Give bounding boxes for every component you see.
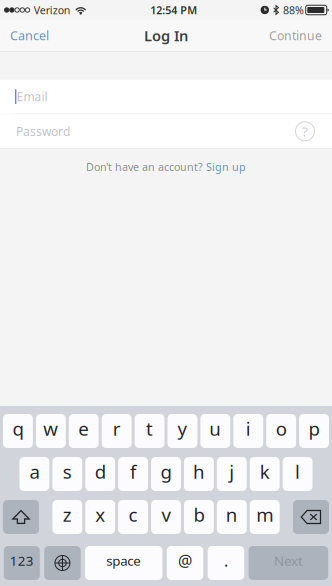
button[interactable]: r <box>102 414 132 448</box>
staticText: c <box>129 502 138 527</box>
button[interactable]: f <box>118 457 148 491</box>
button[interactable]: 123 <box>4 546 40 580</box>
staticText: p <box>308 416 319 441</box>
staticText: y <box>177 416 187 441</box>
button[interactable]: q <box>3 414 33 448</box>
button[interactable]: h <box>184 457 214 491</box>
button[interactable]: a <box>19 457 49 491</box>
button[interactable]: l <box>283 457 312 491</box>
button[interactable]: Password <box>0 114 332 148</box>
staticText: s <box>63 459 72 484</box>
staticText: ? <box>302 122 308 140</box>
button[interactable]: c <box>118 500 148 534</box>
button[interactable]: @ <box>167 546 203 580</box>
staticText: z <box>63 502 72 527</box>
button[interactable]: i <box>233 414 263 448</box>
button[interactable]: d <box>85 457 115 491</box>
button[interactable]: Sign up <box>206 160 246 174</box>
staticText: f <box>130 459 136 484</box>
staticText: x <box>95 502 105 527</box>
button[interactable]: Delete <box>293 500 329 534</box>
staticText: a <box>29 459 39 484</box>
button[interactable]: m <box>250 500 280 534</box>
button[interactable]: w <box>36 414 66 448</box>
staticText: w <box>43 416 58 441</box>
button[interactable]: n <box>217 500 247 534</box>
button[interactable]: x <box>85 500 115 534</box>
button[interactable]: p <box>299 414 329 448</box>
staticText: 123 <box>10 551 34 570</box>
button[interactable]: Next keyboard <box>44 546 81 580</box>
staticText: e <box>78 416 89 441</box>
button[interactable]: Email <box>0 80 332 114</box>
staticText: space <box>106 551 141 570</box>
staticText: b <box>193 502 204 527</box>
staticText: Log In <box>144 26 188 45</box>
staticText: h <box>193 459 205 484</box>
staticText: u <box>209 416 221 441</box>
staticText: Cancel <box>10 27 49 44</box>
button[interactable]: k <box>250 457 280 491</box>
staticText: v <box>161 502 170 527</box>
button[interactable]: o <box>266 414 296 448</box>
staticText: l <box>295 459 300 484</box>
staticText: o <box>276 416 287 441</box>
button[interactable]: j <box>217 457 247 491</box>
button[interactable]: b <box>184 500 214 534</box>
staticText: n <box>226 502 238 527</box>
staticText: . <box>224 550 228 571</box>
staticText: 12:54 PM <box>150 3 197 17</box>
staticText: k <box>260 459 270 484</box>
button[interactable]: y <box>167 414 197 448</box>
button[interactable]: v <box>151 500 181 534</box>
button[interactable]: . <box>208 546 244 580</box>
staticText: g <box>160 459 171 484</box>
staticText: Verizon <box>34 3 71 17</box>
staticText: Continue <box>269 27 322 44</box>
staticText: Password <box>16 123 70 139</box>
button[interactable]: Shift <box>3 500 39 534</box>
button[interactable]: u <box>200 414 230 448</box>
button[interactable]: e <box>69 414 99 448</box>
button[interactable]: s <box>52 457 82 491</box>
staticText: @ <box>178 550 192 571</box>
button[interactable]: Next <box>249 546 328 580</box>
staticText: j <box>229 459 234 484</box>
button[interactable]: Cancel <box>0 19 59 52</box>
button[interactable]: space <box>85 546 162 580</box>
staticText: d <box>95 459 106 484</box>
staticText: 88% <box>283 3 304 17</box>
button[interactable]: g <box>151 457 181 491</box>
button[interactable]: t <box>135 414 164 448</box>
staticText: Email <box>16 89 47 104</box>
button[interactable]: Continue <box>258 19 332 52</box>
staticText: Sign up <box>206 160 246 174</box>
staticText: q <box>12 416 23 441</box>
staticText: Don't have an account? <box>86 160 203 174</box>
staticText: i <box>246 416 251 441</box>
staticText: r <box>113 416 121 441</box>
staticText: m <box>256 502 273 527</box>
staticText: Next <box>274 551 303 570</box>
staticText: t <box>146 416 153 441</box>
button[interactable]: z <box>52 500 82 534</box>
